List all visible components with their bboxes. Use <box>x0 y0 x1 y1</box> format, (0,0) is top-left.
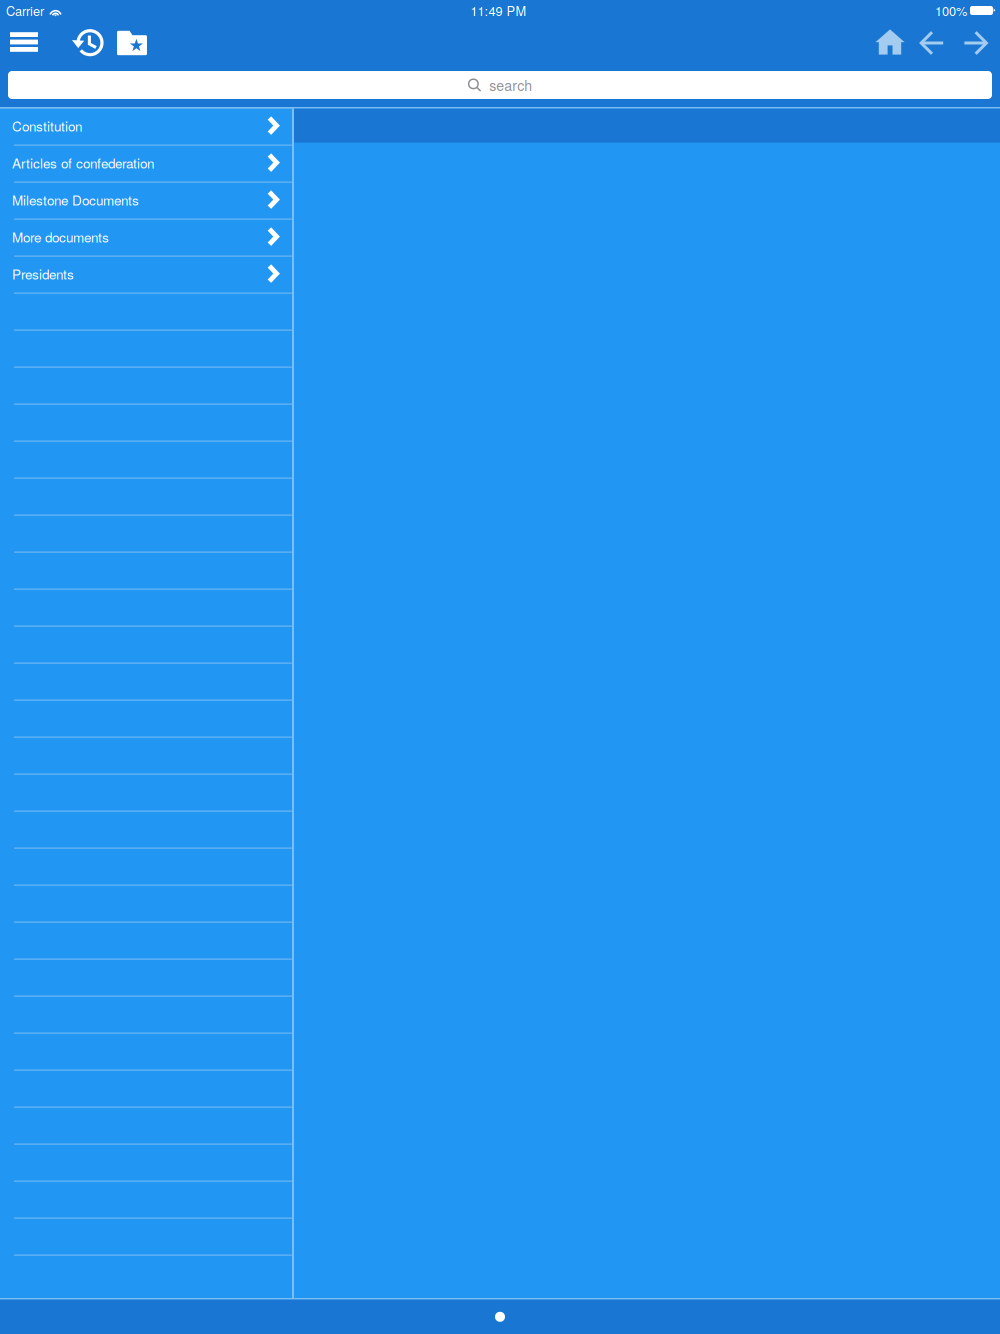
button[interactable]: Home <box>871 22 909 64</box>
button[interactable] <box>0 812 292 849</box>
button[interactable] <box>0 590 292 627</box>
button[interactable]: Menu <box>6 22 42 64</box>
button[interactable] <box>0 1108 292 1145</box>
button[interactable] <box>0 442 292 479</box>
button[interactable] <box>0 849 292 886</box>
button[interactable] <box>0 886 292 923</box>
button[interactable]: More documents <box>0 220 292 257</box>
button[interactable]: Back <box>917 22 948 64</box>
button[interactable] <box>0 997 292 1034</box>
button[interactable] <box>0 479 292 516</box>
button[interactable] <box>0 516 292 553</box>
button[interactable] <box>0 738 292 775</box>
button[interactable] <box>0 405 292 442</box>
staticText: Milestone Documents <box>12 190 139 209</box>
button[interactable]: search <box>0 65 1000 107</box>
button[interactable]: Forward <box>960 22 991 64</box>
button[interactable] <box>0 1034 292 1071</box>
button[interactable] <box>0 701 292 738</box>
button[interactable]: Presidents <box>0 257 292 294</box>
button[interactable] <box>0 1145 292 1182</box>
button[interactable] <box>0 1219 292 1256</box>
staticText: 100% <box>935 1 967 20</box>
staticText: Carrier <box>6 1 44 20</box>
staticText: Articles of confederation <box>12 153 154 172</box>
staticText: search <box>489 75 532 95</box>
button[interactable] <box>0 553 292 590</box>
button[interactable] <box>0 1182 292 1219</box>
button[interactable] <box>0 923 292 960</box>
staticText: 11:49 PM <box>470 1 526 20</box>
button[interactable] <box>0 664 292 701</box>
button[interactable] <box>0 1071 292 1108</box>
staticText: More documents <box>12 227 109 246</box>
staticText: Constitution <box>12 116 82 135</box>
staticText: Presidents <box>12 264 74 283</box>
button[interactable]: Milestone Documents <box>0 183 292 220</box>
button[interactable]: Bookmarks <box>113 23 151 63</box>
button[interactable]: Constitution <box>0 109 292 146</box>
button[interactable] <box>0 368 292 405</box>
button[interactable] <box>0 960 292 997</box>
button[interactable] <box>0 627 292 664</box>
button[interactable]: History <box>68 22 108 63</box>
button[interactable] <box>0 294 292 331</box>
button[interactable] <box>0 775 292 812</box>
button[interactable]: Articles of confederation <box>0 146 292 183</box>
button[interactable] <box>0 331 292 368</box>
